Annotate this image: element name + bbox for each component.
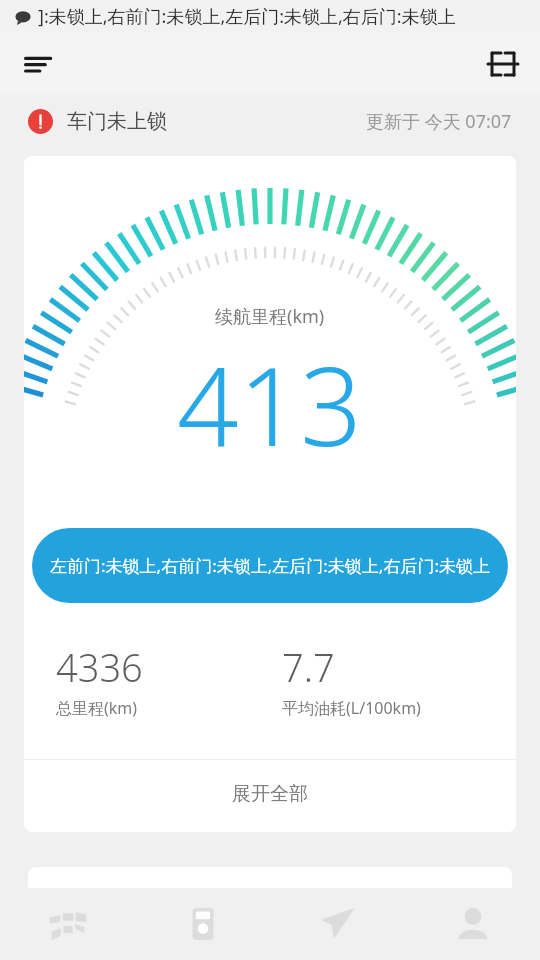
- staticText: 展开全部: [232, 782, 308, 806]
- button[interactable]: 左前门:未锁上,右前门:未锁上,左后门:未锁上,右后门:未锁上: [32, 528, 508, 603]
- staticText: 413: [177, 331, 363, 478]
- staticText: 续航里程(km): [215, 304, 325, 329]
- button[interactable]: 展开全部: [24, 760, 516, 828]
- button[interactable]: Menu: [14, 41, 60, 87]
- button[interactable]: Scan QR code: [480, 41, 526, 87]
- staticText: 总里程(km): [56, 697, 138, 719]
- staticText: 左前门:未锁上,右前门:未锁上,左后门:未锁上,右后门:未锁上: [50, 554, 490, 577]
- staticText: 更新于 今天 07:07: [366, 109, 512, 134]
- button[interactable]: Car control: [0, 888, 135, 960]
- staticText: 4336: [56, 641, 143, 693]
- button[interactable]: Remote: [135, 888, 270, 960]
- staticText: 车门未上锁: [67, 109, 167, 134]
- button[interactable]: 4336: [56, 641, 270, 719]
- staticText: 7.7: [282, 641, 335, 693]
- button[interactable]: 7.7: [282, 641, 516, 719]
- button[interactable]: Navigation: [270, 888, 405, 960]
- button[interactable]: Profile: [405, 888, 540, 960]
- staticText: 平均油耗(L/100km): [282, 697, 421, 719]
- staticText: ]:未锁上,右前门:未锁上,左后门:未锁上,右后门:未锁上: [38, 4, 456, 29]
